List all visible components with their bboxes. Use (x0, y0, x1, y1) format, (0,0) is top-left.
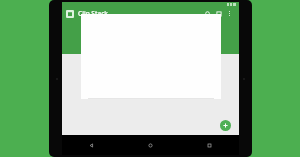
button[interactable]: Search (202, 8, 213, 19)
button[interactable]: Recent apps (180, 135, 239, 155)
staticText: Clip Stack (78, 9, 108, 18)
button[interactable]: Select all (213, 8, 224, 19)
button[interactable]: Back (62, 135, 121, 155)
button[interactable]: Add clipping (220, 120, 231, 131)
button[interactable]: Home (121, 135, 180, 155)
button[interactable]: More options (224, 8, 235, 19)
button[interactable]: App logo (66, 10, 74, 18)
